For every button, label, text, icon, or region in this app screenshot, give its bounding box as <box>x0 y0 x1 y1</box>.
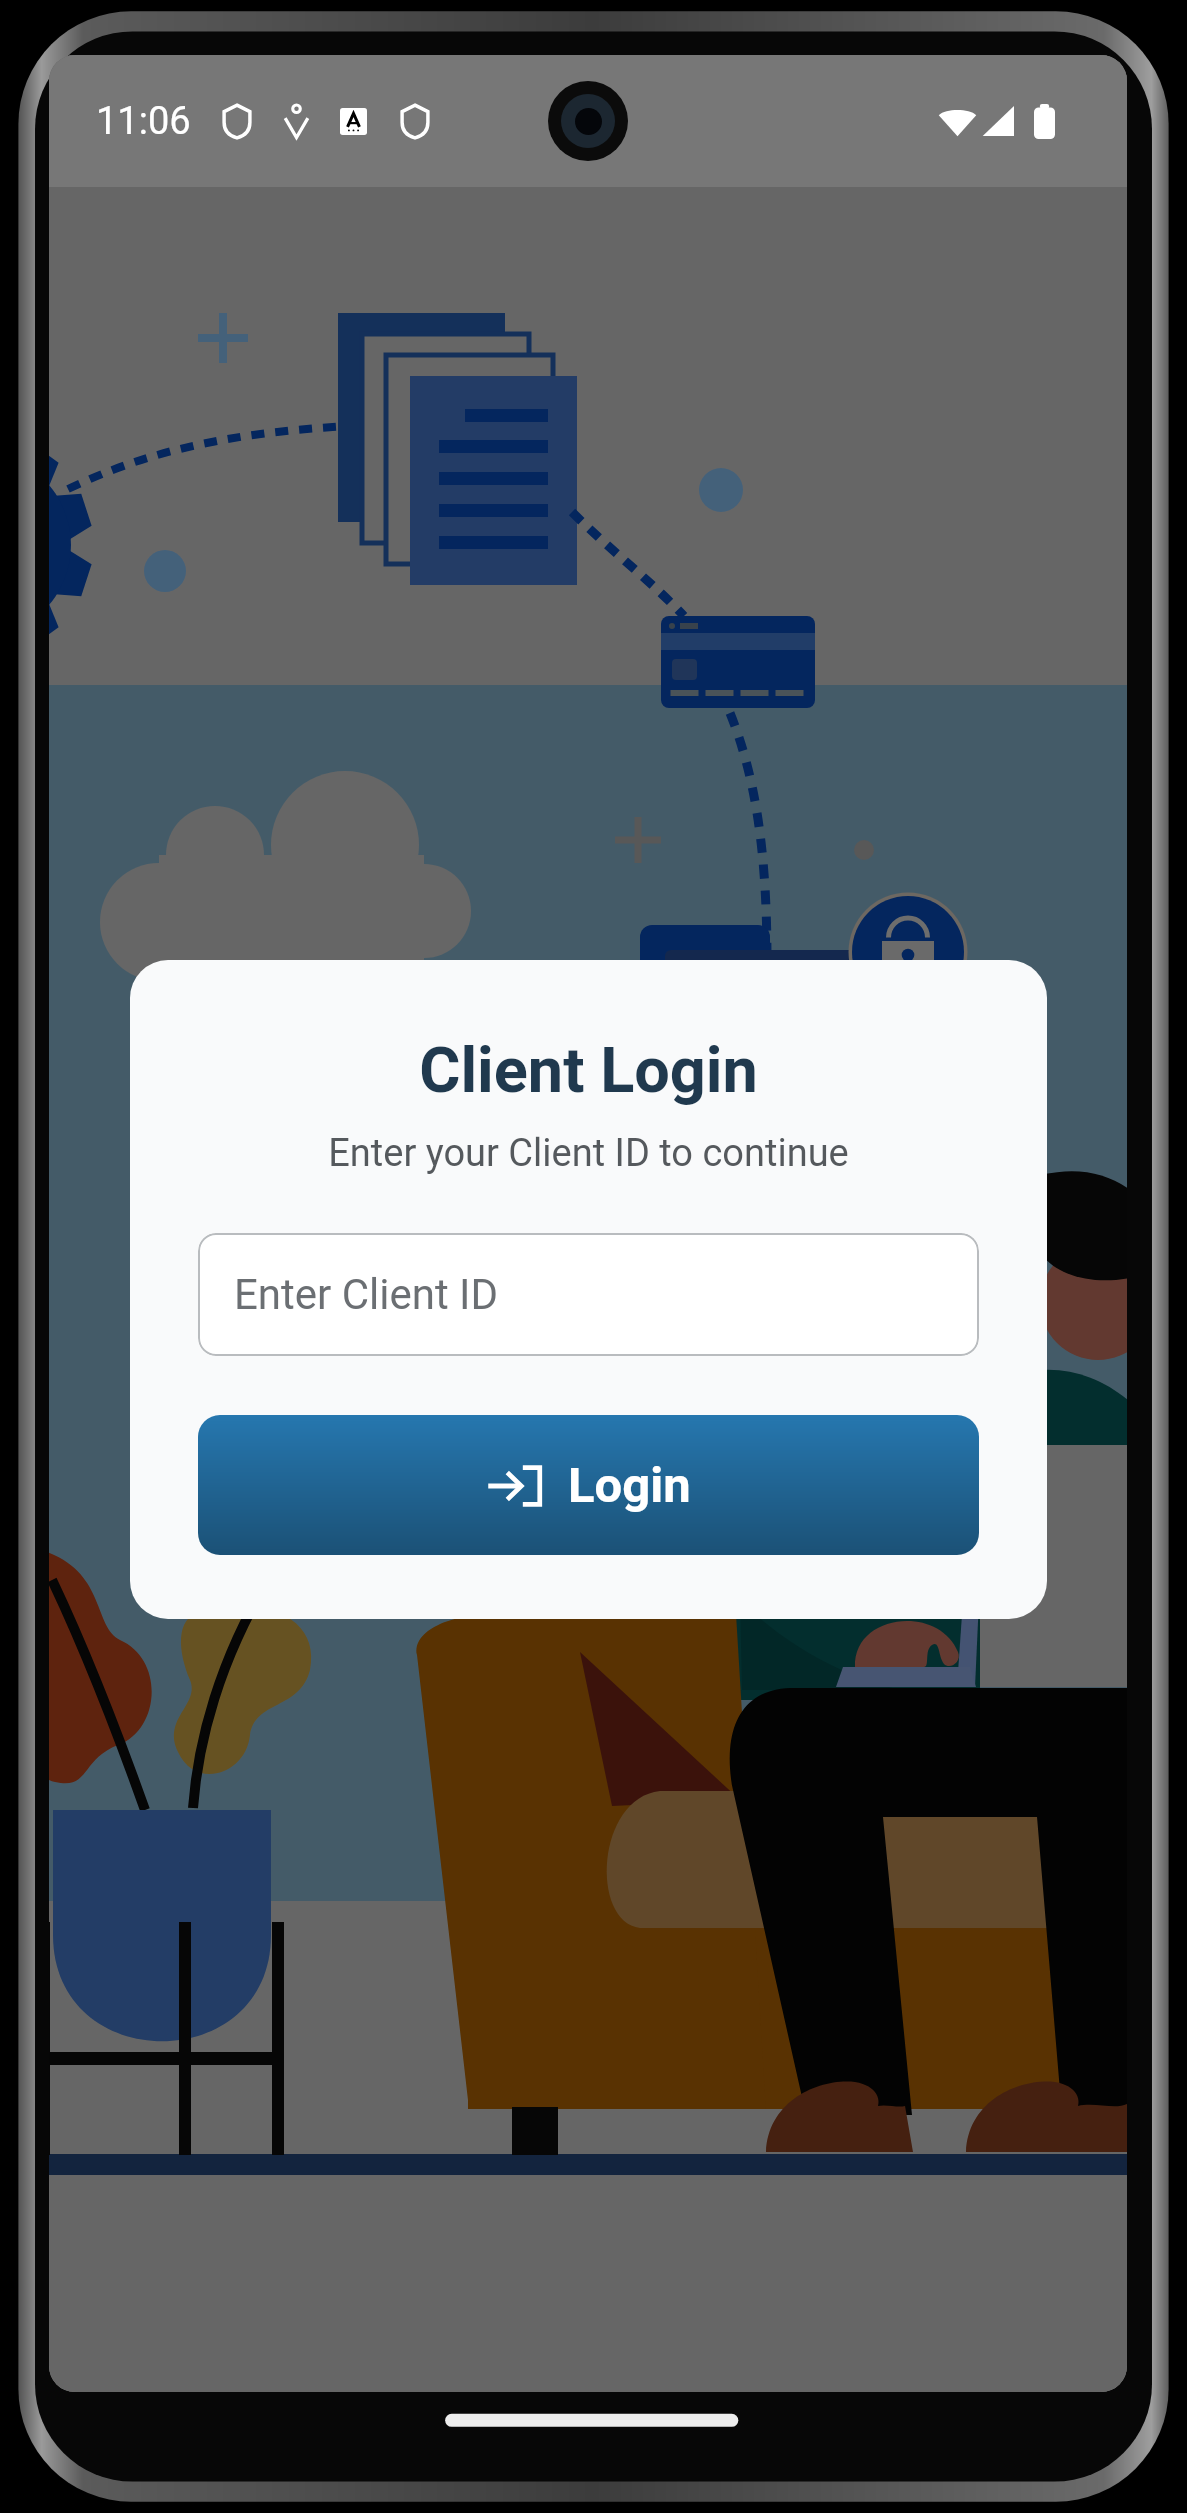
staticText: Client Login <box>419 1034 758 1108</box>
staticText: Enter your Client ID to continue <box>328 1131 849 1176</box>
staticText: 11:06 <box>96 99 191 144</box>
button[interactable]: Enter Client ID <box>198 1233 979 1356</box>
staticText: Login <box>568 1457 691 1514</box>
staticText: Enter Client ID <box>234 1270 499 1319</box>
button[interactable]: Login <box>198 1415 979 1555</box>
